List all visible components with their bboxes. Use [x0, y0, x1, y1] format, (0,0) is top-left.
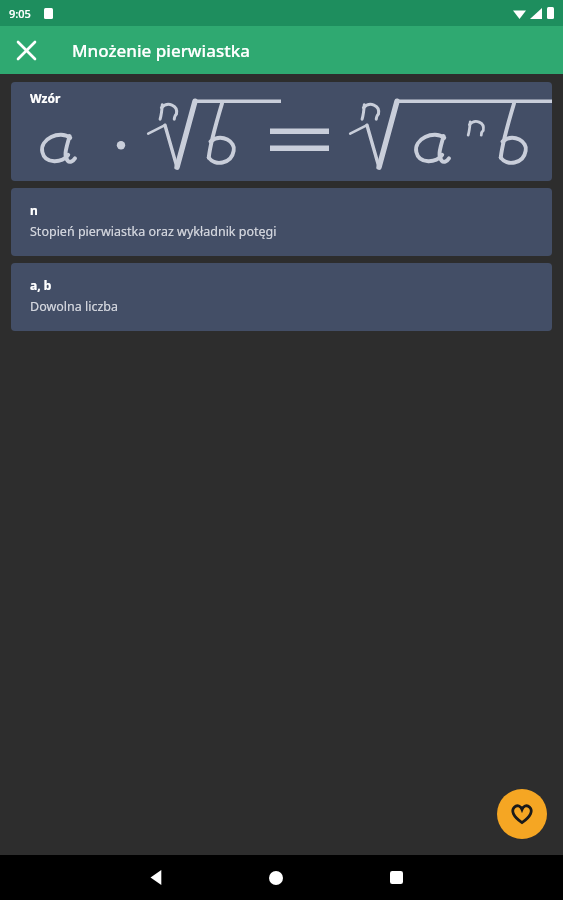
staticText: 9:05 — [9, 6, 31, 21]
button[interactable]: Zamknij — [6, 30, 46, 70]
button[interactable]: Ostatnie aplikacje — [370, 855, 422, 900]
staticText: Stopień pierwiastka oraz wykładnik potęg… — [30, 223, 277, 240]
button[interactable]: Dodaj do ulubionych — [497, 789, 547, 839]
staticText: n — [30, 202, 38, 218]
button[interactable]: Wstecz — [130, 855, 182, 900]
staticText: Wzór — [30, 90, 61, 106]
button[interactable]: Ekran główny — [250, 855, 302, 900]
button[interactable]: n — [11, 188, 552, 256]
button[interactable]: a, b — [11, 263, 552, 331]
staticText: Dowolna liczba — [30, 298, 119, 315]
button[interactable]: Wzór — [11, 82, 552, 181]
staticText: Mnożenie pierwiastka — [72, 39, 250, 62]
staticText: a, b — [30, 277, 52, 293]
